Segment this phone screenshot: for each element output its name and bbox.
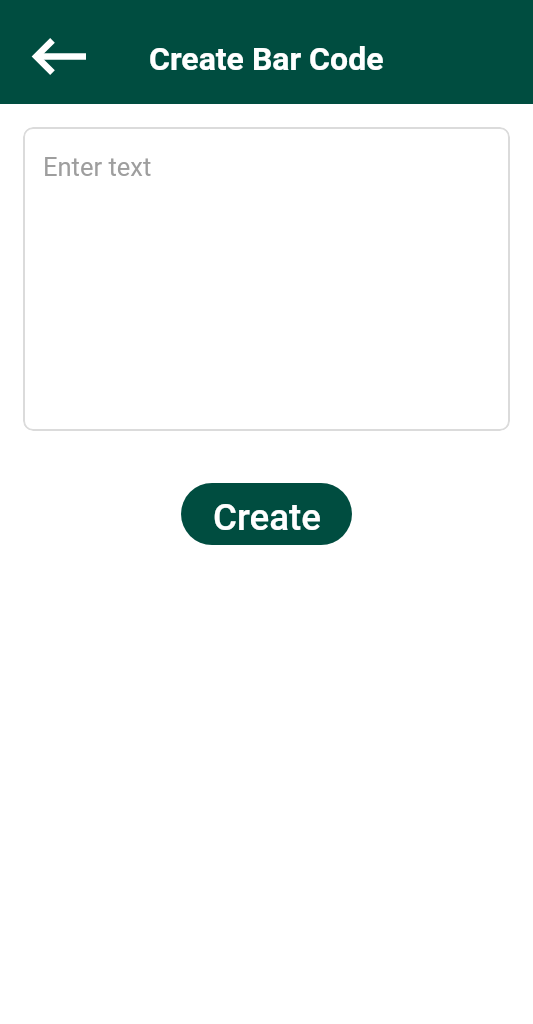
- button[interactable]: Enter text: [23, 127, 510, 431]
- button[interactable]: Back: [15, 8, 103, 96]
- staticText: Create: [213, 496, 321, 539]
- staticText: Create Bar Code: [149, 40, 384, 78]
- staticText: Enter text: [43, 152, 152, 182]
- button[interactable]: Create: [181, 483, 352, 545]
